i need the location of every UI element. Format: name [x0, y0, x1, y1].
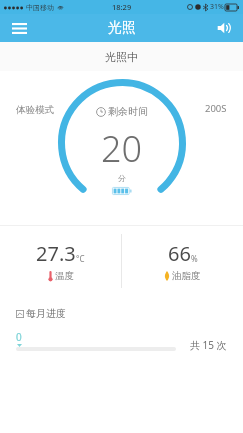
staticText: 剩余时间 [108, 105, 148, 118]
staticText: 中国移动 [26, 3, 54, 12]
staticText: 光照 [108, 19, 136, 37]
staticText: 18:29 [112, 2, 132, 12]
staticText: % [191, 253, 198, 264]
staticText: 共 15 次 [190, 338, 227, 352]
staticText: 31% [210, 2, 224, 12]
staticText: 体验模式 [16, 104, 54, 116]
staticText: 27.3 [36, 240, 76, 267]
staticText: 温度 [55, 270, 74, 282]
staticText: 光照中 [105, 50, 138, 64]
staticText: 20 [101, 124, 143, 173]
button[interactable]: 27.3 [0, 225, 121, 297]
button[interactable]: Sound [211, 15, 237, 41]
staticText: 每月进度 [26, 307, 66, 320]
staticText: 200S [205, 102, 227, 115]
staticText: 66 [168, 240, 191, 267]
staticText: °C [76, 253, 85, 264]
button[interactable]: 66 [122, 225, 243, 297]
staticText: 0 [16, 330, 22, 344]
staticText: 油脂度 [172, 270, 201, 282]
staticText: 分 [118, 173, 126, 183]
button[interactable]: Menu [6, 15, 32, 41]
